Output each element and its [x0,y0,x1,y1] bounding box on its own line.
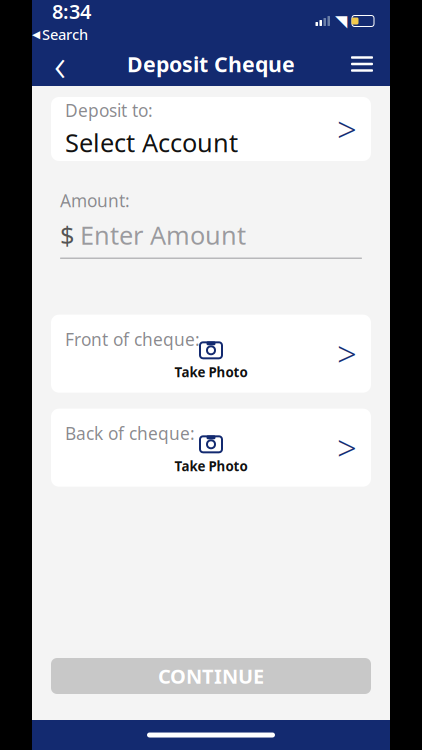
staticText: > [337,425,357,471]
staticText: ‹ [54,34,66,94]
button[interactable]: Menu [340,42,384,86]
staticText: Deposit to: [65,99,153,122]
staticText: Deposit Cheque [127,50,295,78]
staticText: ◥ [335,12,347,30]
button[interactable]: Back [38,42,82,86]
staticText: Front of cheque: [65,328,200,351]
button[interactable]: Front of cheque: [51,315,371,393]
staticText: Take Photo [174,457,247,475]
staticText: Search [42,24,88,44]
staticText: Back of cheque: [65,422,195,445]
button[interactable]: CONTINUE [51,658,371,694]
staticText: > [337,331,357,377]
button[interactable]: Back of cheque: [51,409,371,487]
staticText: 8:34 [52,0,91,25]
button[interactable]: Deposit to: [51,97,371,161]
staticText: Amount: [60,189,130,212]
staticText: Enter Amount [80,218,246,252]
staticText: CONTINUE [158,663,264,689]
staticText: Select Account [65,126,238,159]
staticText: $ [60,218,74,252]
staticText: Take Photo [174,363,247,381]
staticText: > [337,106,357,152]
staticText: ◀ [32,28,40,40]
